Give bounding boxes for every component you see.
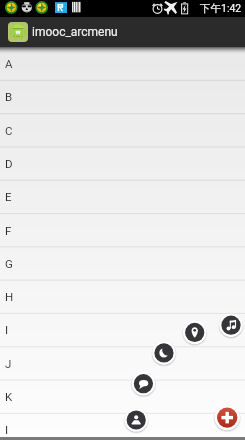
staticText: H <box>5 290 14 303</box>
staticText: 下午1:42 <box>200 2 242 15</box>
button[interactable]: F <box>0 214 245 247</box>
button[interactable]: I <box>0 313 245 346</box>
staticText: F <box>5 224 12 237</box>
button[interactable]: G <box>0 247 245 280</box>
button[interactable]: B <box>0 80 245 113</box>
staticText: D <box>5 157 13 170</box>
button[interactable]: D <box>0 147 245 180</box>
staticText: I <box>5 423 9 436</box>
button[interactable]: H <box>0 280 245 313</box>
staticText: E <box>5 190 12 203</box>
button[interactable]: Night mode <box>152 341 176 365</box>
button[interactable]: Contacts <box>124 408 148 432</box>
button[interactable]: App icon <box>8 22 28 42</box>
button[interactable]: A <box>0 47 245 80</box>
button[interactable]: I <box>0 413 245 440</box>
button[interactable]: E <box>0 180 245 213</box>
button[interactable]: J <box>0 347 245 380</box>
staticText: C <box>5 124 13 137</box>
staticText: A <box>5 57 13 70</box>
staticText: G <box>5 257 13 270</box>
button[interactable]: C <box>0 114 245 147</box>
staticText: K <box>5 390 13 403</box>
staticText: J <box>5 357 12 370</box>
staticText: I <box>5 323 9 336</box>
button[interactable]: Add <box>214 405 240 431</box>
staticText: imooc_arcmenu <box>32 25 118 39</box>
staticText: B <box>5 90 13 103</box>
button[interactable]: Messages <box>131 372 155 396</box>
button[interactable]: Music <box>219 313 243 337</box>
button[interactable]: Location <box>183 320 207 344</box>
button[interactable]: K <box>0 380 245 413</box>
